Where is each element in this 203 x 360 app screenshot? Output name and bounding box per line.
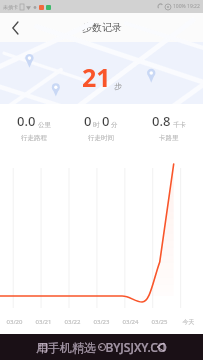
staticText: 分 [111, 121, 118, 129]
staticText: 03/21 [29, 318, 58, 326]
staticText: 03/24 [116, 318, 145, 326]
staticText: 时 [93, 121, 100, 129]
button[interactable]: 0.0 [0, 104, 67, 150]
staticText: 0.0 [17, 112, 36, 130]
button[interactable]: Back [0, 13, 30, 42]
staticText: 千卡 [173, 121, 186, 129]
staticText: 未插卡 [3, 4, 18, 10]
staticText: 21 [82, 60, 111, 94]
staticText: 03/22 [58, 318, 87, 326]
staticText: 03/20 [0, 318, 29, 326]
staticText: 今天 [174, 318, 203, 326]
staticText: 卡路里 [159, 134, 179, 142]
button[interactable]: 0.8 [135, 104, 203, 150]
staticText: 公里 [38, 121, 51, 129]
staticText: 行走时间 [88, 134, 114, 142]
staticText: 03/25 [145, 318, 174, 326]
staticText: 0 [84, 112, 92, 130]
staticText: 0 [102, 112, 110, 130]
button[interactable]: Back [144, 334, 176, 360]
button[interactable]: Home [86, 334, 118, 360]
button[interactable]: Recents [27, 334, 59, 360]
staticText: 0.8 [152, 112, 171, 130]
staticText: 03/23 [87, 318, 116, 326]
staticText: 步 [114, 81, 122, 91]
staticText: 步数记录 [82, 21, 122, 34]
staticText: 行走路程 [21, 134, 47, 142]
staticText: 100% 19:22 [173, 3, 200, 10]
staticText: 用手机精选 · BYJSJXY.CO [36, 339, 167, 355]
button[interactable]: 0 [67, 104, 135, 150]
